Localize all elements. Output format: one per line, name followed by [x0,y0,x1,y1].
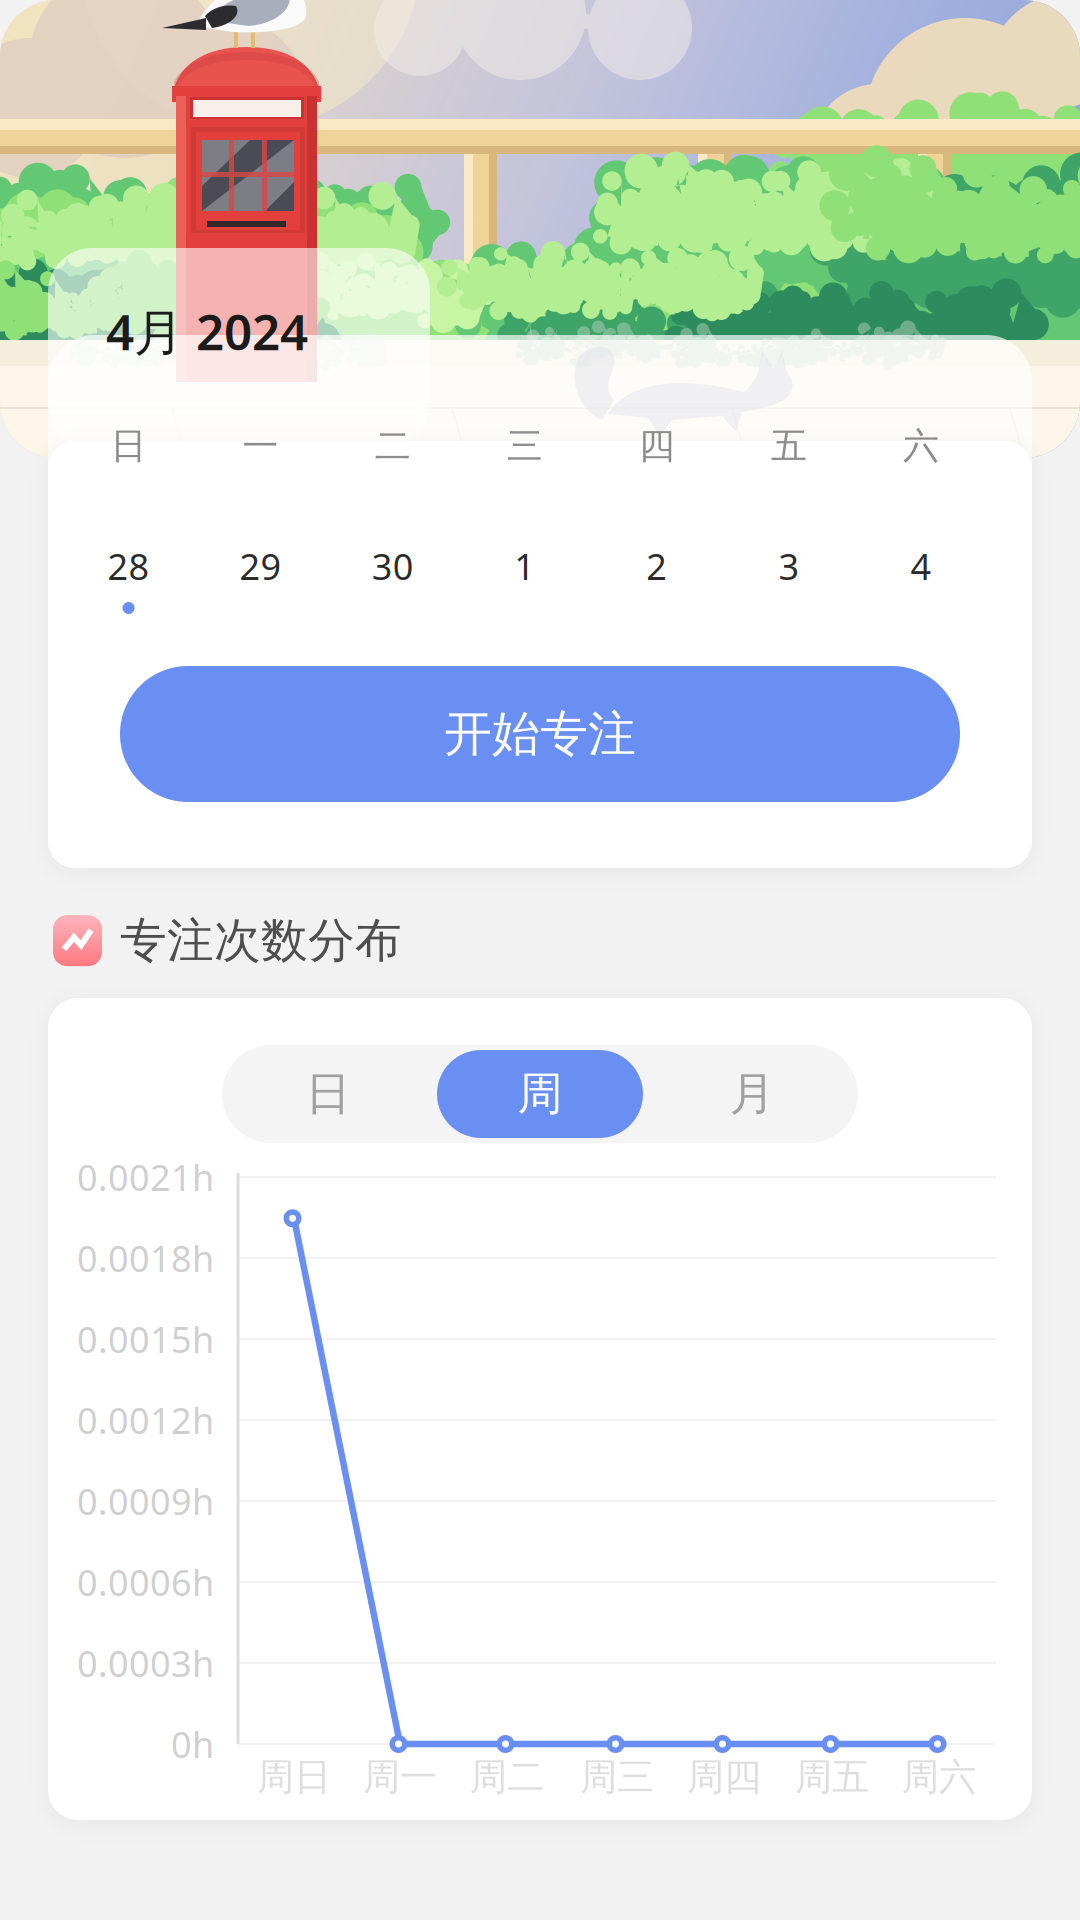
staticText: 专注次数分布 [120,912,402,969]
staticText: 日 [305,1066,350,1122]
staticText: 0.0009h [77,1477,214,1525]
staticText: 周五 [795,1754,869,1800]
staticText: 0.0015h [77,1315,214,1363]
staticText: 2 [646,542,667,590]
staticText: 0.0006h [77,1558,214,1606]
staticText: 周 [517,1066,562,1122]
button[interactable]: 30 [327,539,459,619]
staticText: 0.0018h [77,1234,214,1282]
staticText: 0.0021h [77,1153,214,1201]
staticText: 周六 [902,1754,976,1800]
button[interactable]: 3 [723,539,855,619]
button[interactable]: 月 [646,1045,858,1143]
button[interactable]: 1 [459,539,591,619]
staticText: 28 [107,542,149,590]
button[interactable]: 2 [591,539,723,619]
staticText: 四 [639,424,675,468]
staticText: 周日 [257,1754,331,1800]
button[interactable]: 29 [195,539,327,619]
button[interactable]: 4 [855,539,987,619]
staticText: 二 [375,424,411,468]
staticText: 29 [240,542,282,590]
staticText: 一 [243,424,279,468]
staticText: 五 [771,424,807,468]
staticText: 1 [514,542,535,590]
staticText: 0h [171,1720,214,1768]
staticText: 0.0012h [77,1396,214,1444]
staticText: 月 [729,1066,774,1122]
staticText: 六 [903,424,939,468]
staticText: 日 [110,424,146,468]
button[interactable]: 周 [434,1045,646,1143]
staticText: 开始专注 [444,704,636,763]
staticText: 三 [507,424,543,468]
staticText: 周三 [580,1754,654,1800]
staticText: 4月 2024 [106,298,308,364]
staticText: 3 [778,542,799,590]
staticText: 4 [910,542,931,590]
staticText: 周一 [363,1754,437,1800]
button[interactable]: 日 [222,1045,434,1143]
staticText: 周二 [470,1754,544,1800]
staticText: 30 [372,542,414,590]
staticText: 周四 [687,1754,761,1800]
staticText: 0.0003h [77,1639,214,1687]
button[interactable]: 28 [62,539,195,619]
button[interactable]: 开始专注 [120,666,960,802]
